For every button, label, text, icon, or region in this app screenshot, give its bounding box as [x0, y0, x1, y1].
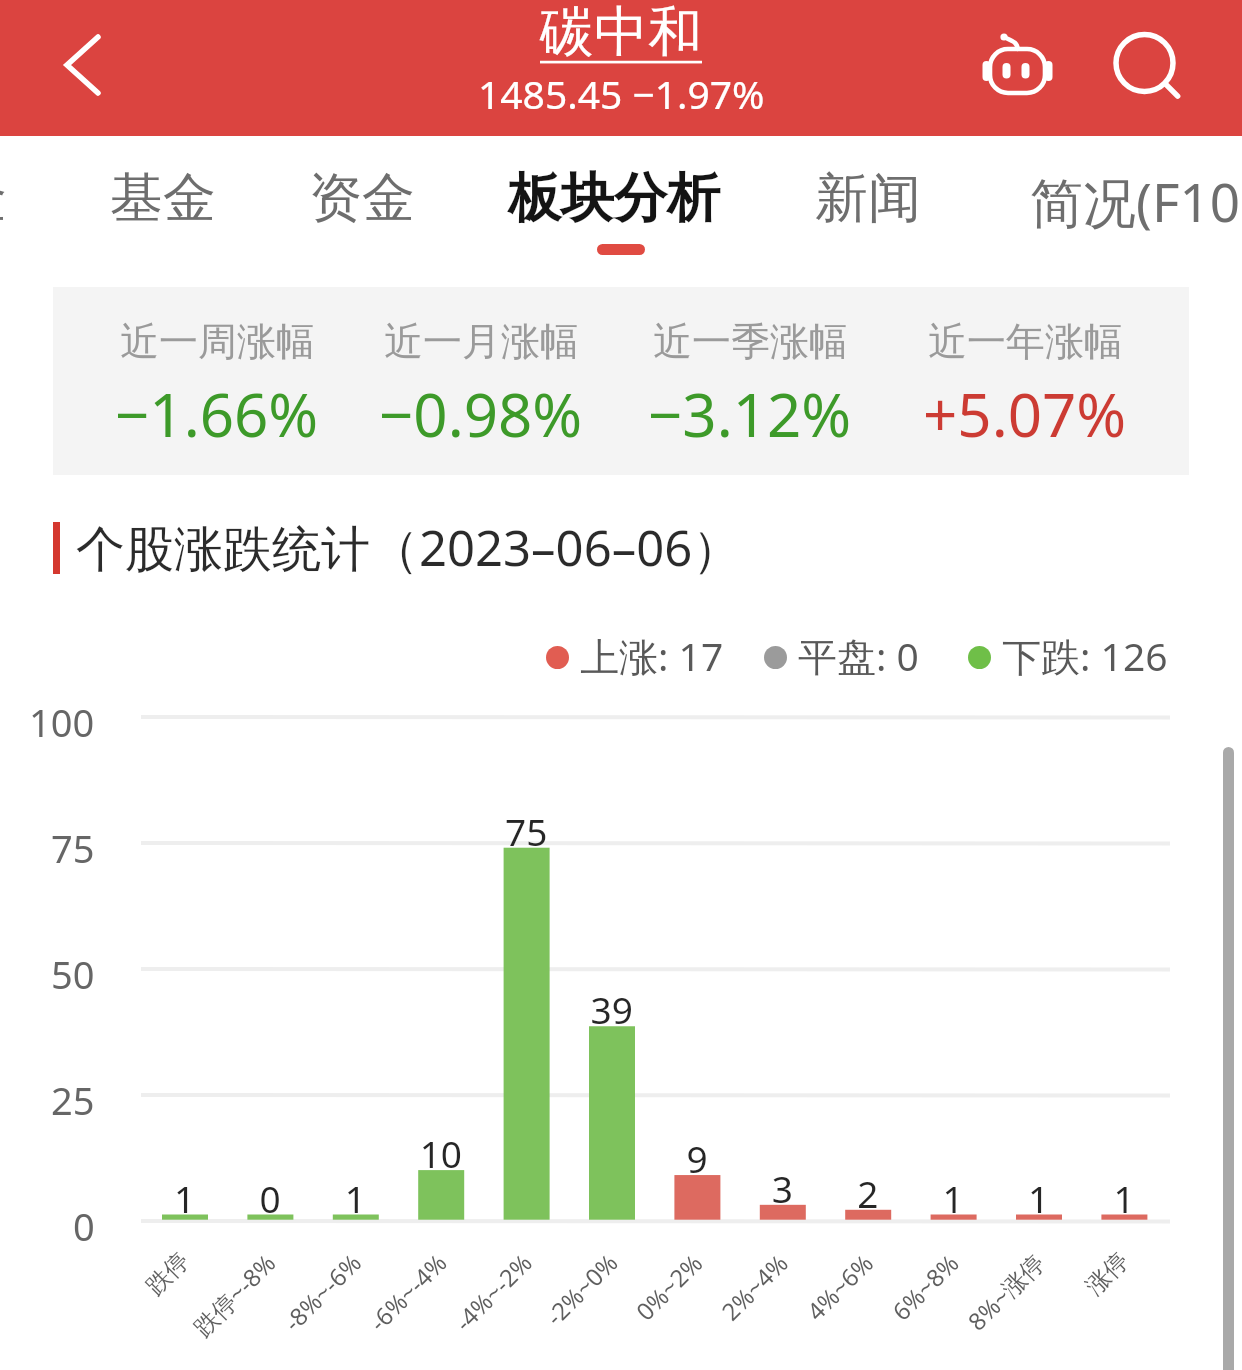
staticText: 近一年涨幅 — [928, 317, 1123, 366]
staticText: 简况(F10 — [1030, 165, 1241, 237]
staticText: 基金 — [0, 165, 7, 232]
staticText: −1.66% — [115, 373, 319, 455]
button[interactable]: 资金 — [287, 142, 437, 256]
button[interactable]: 上涨: 17 — [546, 629, 724, 682]
staticText: 近一季涨幅 — [653, 317, 848, 366]
staticText: 个股涨跌统计（2023–06–06） — [76, 514, 742, 581]
staticText: 板块分析 — [508, 165, 720, 232]
button[interactable]: 基金 — [88, 142, 238, 256]
button[interactable]: 平盘: 0 — [764, 629, 919, 682]
button[interactable]: 下跌: 126 — [968, 629, 1168, 682]
staticText: 上涨: 17 — [580, 629, 724, 682]
button[interactable]: Back — [34, 16, 134, 116]
button[interactable]: 简况(F10 — [1008, 142, 1242, 261]
staticText: 新闻 — [815, 165, 921, 232]
button[interactable]: Search — [1098, 16, 1198, 116]
button[interactable]: 基金 — [0, 142, 7, 256]
staticText: 基金 — [110, 165, 216, 232]
button[interactable]: 板块分析 — [486, 142, 742, 256]
staticText: −0.98% — [379, 373, 583, 455]
staticText: 平盘: 0 — [798, 629, 919, 682]
staticText: −3.12% — [648, 373, 852, 455]
button[interactable]: AI Assistant — [970, 16, 1070, 116]
staticText: 近一周涨幅 — [120, 317, 315, 366]
button[interactable]: 新闻 — [793, 142, 943, 256]
staticText: 1485.45 −1.97% — [478, 67, 765, 120]
staticText: 下跌: 126 — [1002, 629, 1168, 682]
staticText: +5.07% — [923, 373, 1127, 455]
staticText: 近一月涨幅 — [384, 317, 579, 366]
staticText: 资金 — [309, 165, 415, 232]
staticText: 碳中和 — [540, 0, 702, 66]
